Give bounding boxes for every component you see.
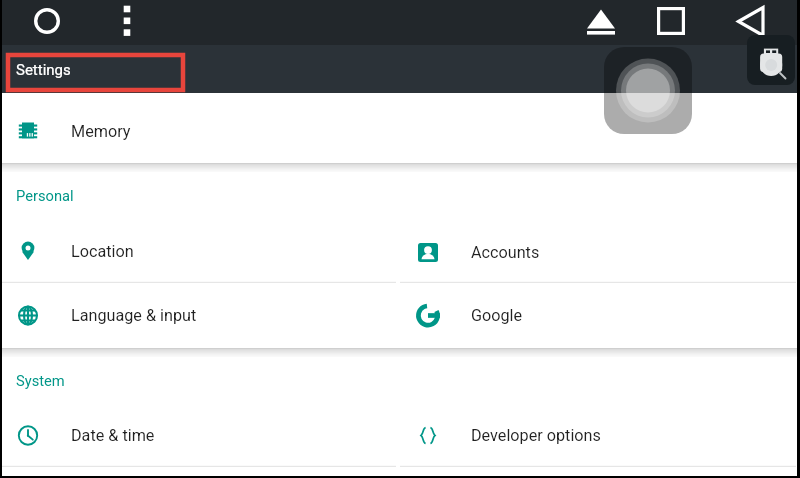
button[interactable]: Accounts <box>400 218 800 283</box>
button[interactable]: Record <box>34 8 60 34</box>
staticText: System <box>16 372 65 389</box>
button[interactable]: Back <box>736 5 766 38</box>
button[interactable]: Developer options <box>400 402 800 467</box>
staticText: Google <box>471 306 523 325</box>
button[interactable]: Memory <box>0 99 400 163</box>
staticText: Settings <box>16 61 71 79</box>
button[interactable]: Date & time <box>0 402 400 467</box>
button[interactable]: More options <box>118 3 136 41</box>
staticText: Personal <box>16 187 74 204</box>
button[interactable]: Eject <box>585 4 617 38</box>
button[interactable]: Home <box>657 7 685 35</box>
staticText: Memory <box>71 122 131 141</box>
staticText: Location <box>71 242 134 261</box>
button[interactable]: Search <box>747 35 795 85</box>
button[interactable]: Settings <box>8 55 183 90</box>
button[interactable]: Google <box>400 283 800 348</box>
staticText: Language & input <box>71 306 197 325</box>
staticText: Accounts <box>471 243 540 262</box>
staticText: Date & time <box>71 426 155 445</box>
button[interactable]: Location <box>0 218 400 283</box>
staticText: Developer options <box>471 426 601 445</box>
button[interactable]: Language & input <box>0 283 400 348</box>
